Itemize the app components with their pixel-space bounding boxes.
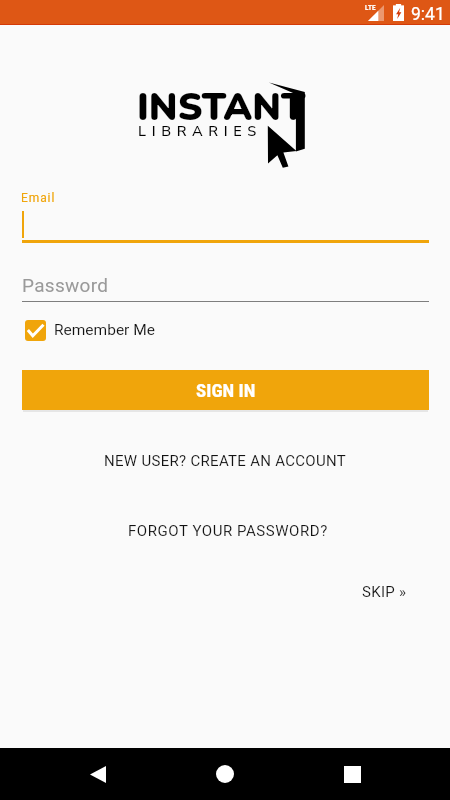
staticText: LTE [365, 4, 376, 11]
staticText: INSTANT [137, 82, 306, 134]
button[interactable]: Home [199, 748, 251, 800]
staticText: 9:41 [411, 4, 445, 25]
button[interactable]: SIGN IN [22, 370, 429, 410]
staticText: Remember Me [54, 321, 155, 339]
button[interactable]: Remember Me [20, 315, 160, 345]
staticText: LIBRARIES [138, 121, 263, 141]
button[interactable]: NEW USER? CREATE AN ACCOUNT [60, 449, 390, 473]
button[interactable]: Back [72, 748, 124, 800]
staticText: FORGOT YOUR PASSWORD? [128, 522, 328, 540]
staticText: Password [22, 274, 109, 296]
button[interactable]: FORGOT YOUR PASSWORD? [63, 519, 393, 543]
staticText: Email [21, 191, 56, 205]
staticText: SIGN IN [196, 379, 256, 401]
staticText: SKIP » [362, 583, 407, 601]
button[interactable]: SKIP » [345, 581, 407, 603]
button[interactable]: Recent apps [326, 748, 378, 800]
staticText: NEW USER? CREATE AN ACCOUNT [104, 452, 347, 470]
